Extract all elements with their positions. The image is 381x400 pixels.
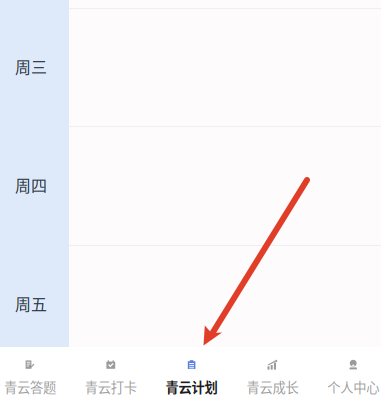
button[interactable]: 青云计划 bbox=[151, 347, 232, 400]
staticText: 周五 bbox=[15, 292, 47, 315]
staticText: 周四 bbox=[15, 173, 47, 196]
staticText: 周三 bbox=[15, 55, 47, 78]
staticText: 青云计划 bbox=[166, 377, 218, 396]
staticText: 青云打卡 bbox=[85, 377, 137, 396]
button[interactable]: 青云打卡 bbox=[70, 347, 151, 400]
staticText: 个人中心 bbox=[327, 377, 379, 396]
button[interactable]: 青云成长 bbox=[232, 347, 313, 400]
staticText: 青云成长 bbox=[246, 377, 298, 396]
button[interactable]: 个人中心 bbox=[313, 347, 381, 400]
staticText: 青云答题 bbox=[4, 377, 56, 396]
button[interactable]: 青云答题 bbox=[0, 347, 70, 400]
